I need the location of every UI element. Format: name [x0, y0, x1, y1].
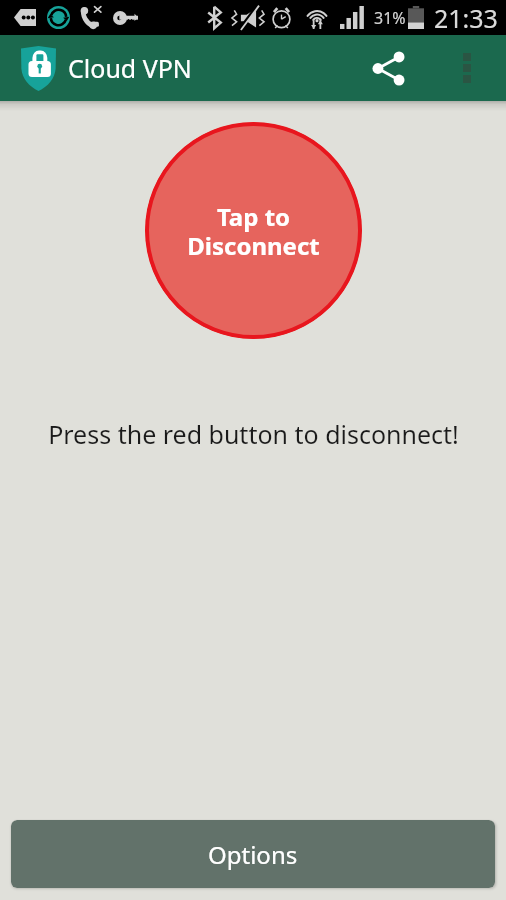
button[interactable]: Share	[364, 44, 412, 92]
staticText: 21:33	[434, 1, 498, 35]
staticText: Tap to Disconnect	[187, 200, 320, 262]
staticText: Options	[208, 838, 298, 871]
staticText: Cloud VPN	[68, 51, 192, 85]
button[interactable]: Options	[11, 820, 495, 888]
button[interactable]: More options	[428, 35, 506, 101]
button[interactable]: Tap to Disconnect	[145, 122, 362, 339]
staticText: 31%	[374, 7, 406, 29]
staticText: Press the red button to disconnect!	[48, 417, 459, 451]
